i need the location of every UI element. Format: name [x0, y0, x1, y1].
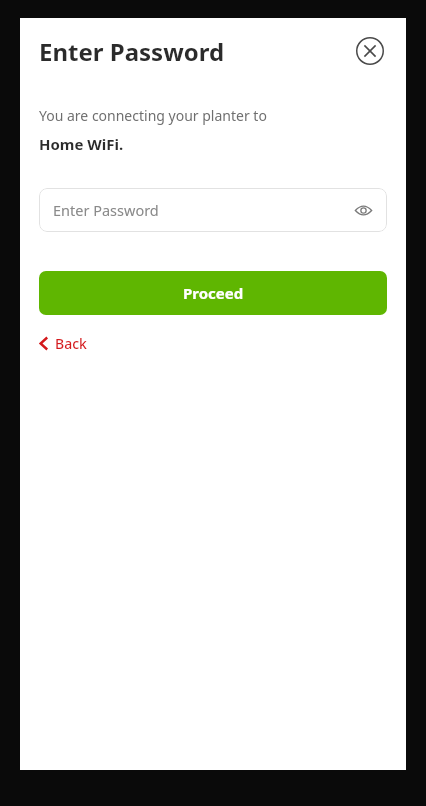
button[interactable]: Back [35, 329, 97, 358]
button[interactable]: Enter Password [39, 188, 387, 232]
staticText: Proceed [183, 283, 244, 303]
staticText: You are connecting your planter to [39, 106, 267, 125]
button[interactable]: Proceed [39, 271, 387, 315]
staticText: Home WiFi. [39, 134, 124, 154]
staticText: Enter Password [39, 35, 353, 68]
button[interactable]: Close [353, 34, 387, 68]
staticText: Enter Password [53, 200, 352, 220]
staticText: Back [55, 334, 87, 353]
button[interactable]: Show password [352, 199, 374, 221]
